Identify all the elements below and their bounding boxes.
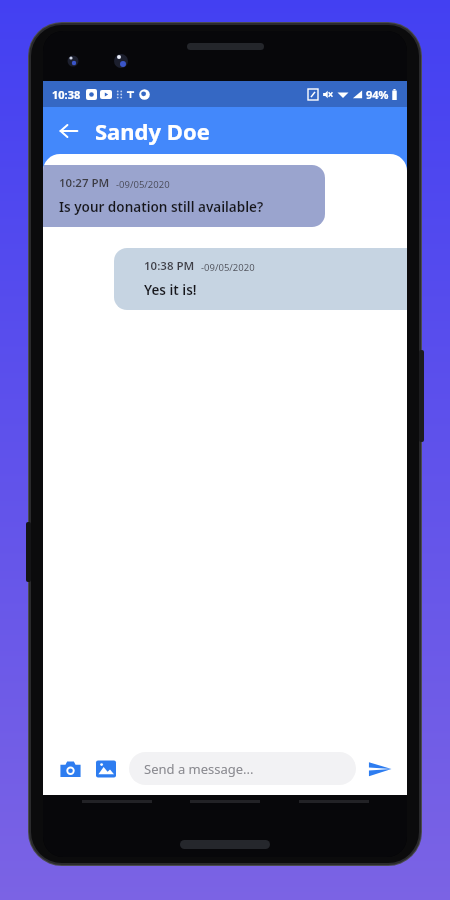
button[interactable]: Attach image bbox=[89, 752, 123, 786]
staticText: Yes it is! bbox=[144, 281, 197, 299]
staticText: Sandy Doe bbox=[95, 116, 210, 146]
button[interactable]: Take photo bbox=[53, 752, 87, 786]
button[interactable]: Back bbox=[49, 111, 89, 151]
staticText: Is your donation still available? bbox=[59, 198, 264, 216]
staticText: 10:27 PM bbox=[59, 175, 110, 191]
staticText: 10:38 bbox=[52, 87, 81, 102]
button[interactable]: Send bbox=[363, 752, 397, 786]
staticText: Send a message... bbox=[144, 760, 254, 778]
button[interactable]: 10:27 PM bbox=[43, 165, 325, 227]
button[interactable]: 10:38 PM bbox=[114, 248, 407, 310]
staticText: -09/05/2020 bbox=[116, 178, 170, 191]
button[interactable]: Send a message... bbox=[129, 752, 356, 785]
staticText: -09/05/2020 bbox=[201, 261, 255, 274]
staticText: 10:38 PM bbox=[144, 258, 195, 274]
staticText: 94% bbox=[366, 87, 389, 102]
